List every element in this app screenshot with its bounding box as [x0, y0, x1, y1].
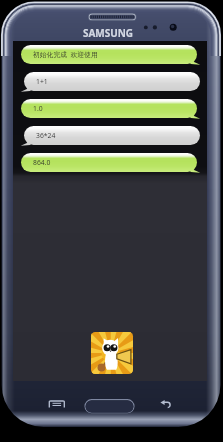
staticText: 1.0	[33, 104, 43, 113]
button[interactable]: 36*24	[24, 126, 200, 145]
button[interactable]: 1+1	[24, 72, 200, 91]
button[interactable]: 864.0	[21, 153, 197, 172]
staticText: 初始化完成 欢迎使用	[33, 50, 98, 59]
button[interactable]: 初始化完成 欢迎使用	[21, 45, 197, 64]
button[interactable]: 1.0	[21, 99, 197, 118]
staticText: 1+1	[36, 77, 48, 86]
staticText: 36*24	[36, 131, 56, 140]
staticText: SAMSUNG	[83, 26, 133, 40]
button[interactable]: Assistant app icon	[91, 332, 133, 374]
staticText: 864.0	[33, 158, 51, 167]
